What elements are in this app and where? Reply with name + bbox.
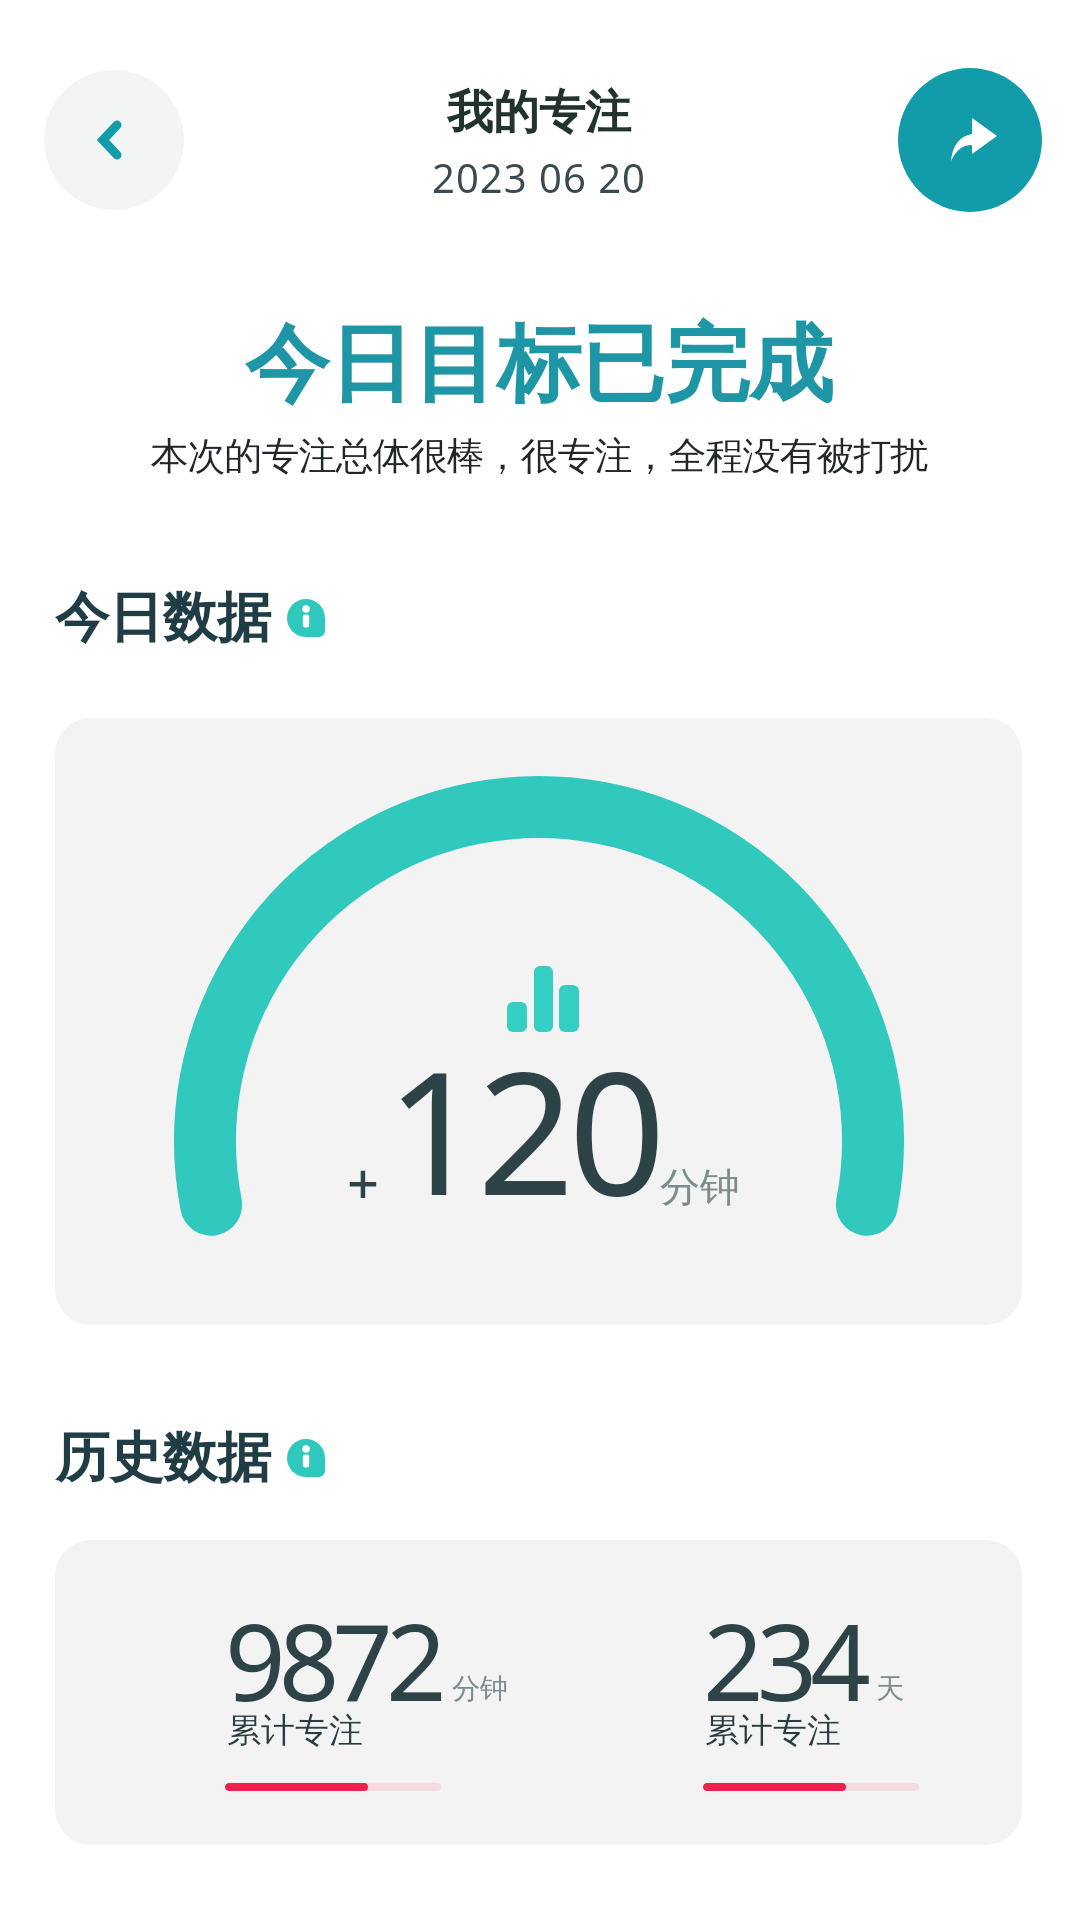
- staticText: 历史数据: [55, 1424, 271, 1492]
- staticText: 2023 06 20: [0, 150, 1078, 204]
- staticText: 120: [386, 1013, 660, 1245]
- button[interactable]: [287, 1439, 325, 1477]
- staticText: 今日数据: [55, 584, 271, 652]
- staticText: 天: [876, 1671, 904, 1706]
- staticText: 分钟: [660, 1162, 740, 1212]
- staticText: +: [347, 1144, 380, 1220]
- button[interactable]: [287, 599, 325, 637]
- button[interactable]: [898, 68, 1042, 212]
- staticText: 我的专注: [0, 84, 1078, 142]
- button[interactable]: [44, 70, 184, 210]
- staticText: 234: [703, 1588, 864, 1732]
- staticText: 9872: [225, 1588, 440, 1732]
- staticText: 分钟: [452, 1671, 508, 1706]
- staticText: 累计专注: [705, 1709, 841, 1752]
- staticText: 累计专注: [227, 1709, 363, 1752]
- staticText: 本次的专注总体很棒，很专注，全程没有被打扰: [0, 432, 1078, 480]
- staticText: 今日目标已完成: [0, 312, 1078, 418]
